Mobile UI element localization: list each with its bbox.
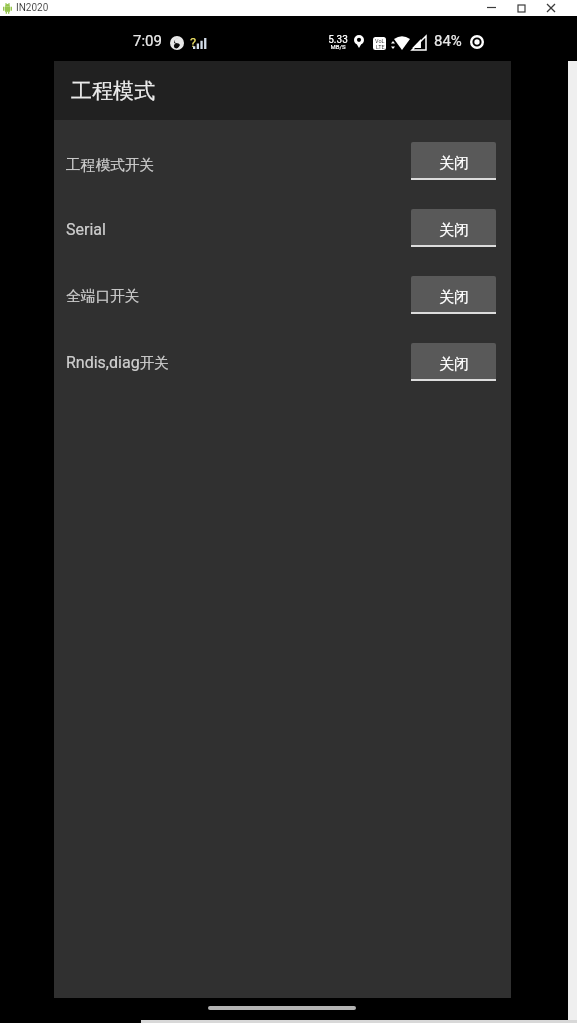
staticText: ? — [190, 35, 197, 50]
staticText: VoL — [375, 38, 385, 44]
staticText: 关闭 — [439, 355, 469, 374]
button[interactable]: Serial — [54, 209, 394, 247]
staticText: 关闭 — [439, 221, 469, 240]
staticText: 7:09 — [133, 32, 162, 50]
button[interactable]: Rndis,diag开关 — [54, 343, 394, 381]
button[interactable]: 全端口开关 — [54, 276, 394, 314]
staticText: 全端口开关 — [66, 287, 140, 306]
button[interactable]: Close — [536, 0, 566, 16]
button[interactable]: 关闭 — [411, 343, 496, 381]
staticText: 工程模式开关 — [66, 156, 155, 175]
staticText: 关闭 — [439, 154, 469, 173]
button[interactable]: Minimize — [476, 0, 506, 16]
staticText: 84% — [434, 32, 462, 50]
staticText: MB/S — [330, 43, 346, 50]
staticText: LTE — [376, 44, 385, 50]
staticText: 工程模式 — [71, 78, 155, 104]
button[interactable]: 工程模式开关 — [54, 142, 394, 180]
button[interactable]: 关闭 — [411, 142, 496, 180]
staticText: IN2020 — [16, 2, 49, 14]
staticText: 5.33 — [328, 34, 348, 46]
staticText: Rndis,diag开关 — [66, 353, 169, 372]
staticText: 关闭 — [439, 288, 469, 307]
button[interactable]: 关闭 — [411, 276, 496, 314]
staticText: Serial — [66, 220, 106, 239]
button[interactable]: Maximize — [506, 0, 536, 16]
button[interactable]: 关闭 — [411, 209, 496, 247]
